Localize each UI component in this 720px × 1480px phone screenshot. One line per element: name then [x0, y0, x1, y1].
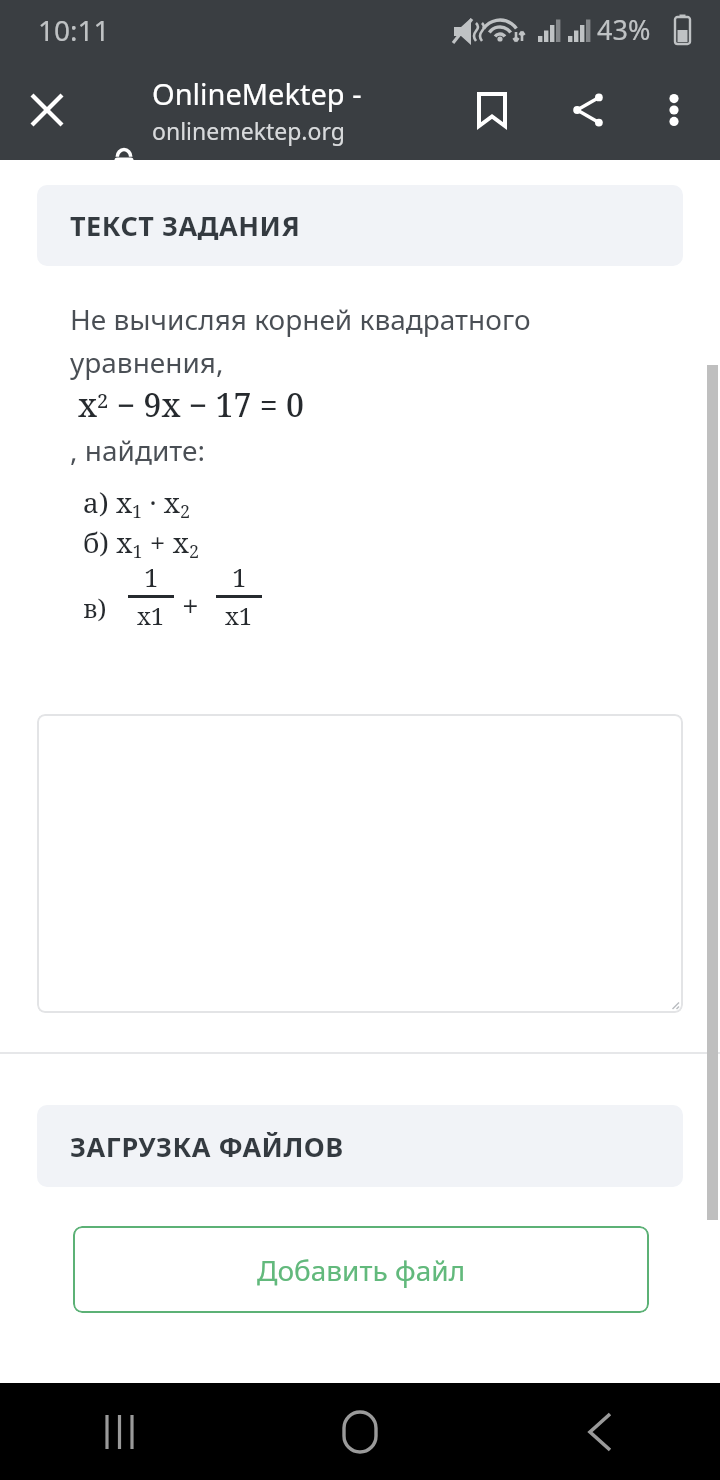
- button[interactable]: More options: [643, 79, 705, 141]
- button[interactable]: Share: [557, 79, 619, 141]
- button[interactable]: Home: [240, 1383, 480, 1480]
- button[interactable]: Back: [480, 1383, 720, 1480]
- staticText: OnlineMektep -: [152, 74, 362, 113]
- staticText: ТЕКСТ ЗАДАНИЯ: [70, 207, 301, 244]
- staticText: , найдите:: [70, 431, 205, 469]
- button[interactable]: [37, 714, 683, 1013]
- staticText: б) x1 + x2: [83, 523, 199, 564]
- button[interactable]: Close: [16, 79, 78, 141]
- staticText: 10:11: [38, 11, 110, 49]
- staticText: а) x1 · x2: [83, 483, 190, 524]
- staticText: в): [83, 590, 107, 625]
- staticText: +: [182, 585, 199, 626]
- staticText: x2 − 9x − 17 = 0: [78, 383, 305, 427]
- button[interactable]: Recent apps: [0, 1383, 240, 1480]
- button[interactable]: Bookmark: [461, 79, 523, 141]
- staticText: 43%: [597, 11, 651, 48]
- staticText: 1: [144, 559, 159, 594]
- staticText: Добавить файл: [257, 1251, 466, 1289]
- staticText: onlinemektep.org: [152, 115, 345, 146]
- staticText: Не вычисляя корней квадратного: [70, 300, 531, 338]
- staticText: ЗАГРУЗКА ФАЙЛОВ: [70, 1128, 344, 1165]
- button[interactable]: ТЕКСТ ЗАДАНИЯ: [37, 185, 683, 266]
- staticText: x1: [137, 599, 165, 632]
- staticText: уравнения,: [70, 343, 224, 381]
- button[interactable]: ЗАГРУЗКА ФАЙЛОВ: [37, 1105, 683, 1187]
- button[interactable]: Добавить файл: [73, 1226, 649, 1313]
- staticText: 1: [232, 559, 247, 594]
- staticText: x1: [225, 599, 253, 632]
